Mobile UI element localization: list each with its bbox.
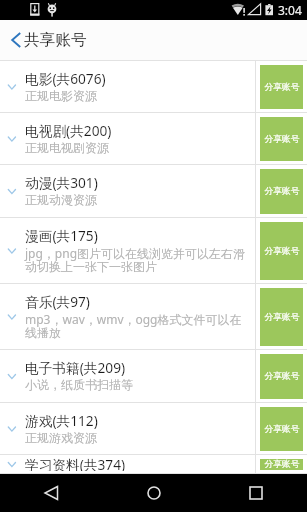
button[interactable]: 动漫(共301) [0,165,255,218]
button[interactable]: 分享账号 [260,65,303,109]
staticText: 动漫(共301) [25,173,98,192]
staticText: 漫画(共175) [25,226,98,245]
button[interactable]: 学习资料(共374) [0,455,255,474]
staticText: 电视剧(共200) [25,121,112,140]
staticText: 分享账号 [264,134,300,145]
staticText: 分享账号 [264,424,300,435]
staticText: 小说，纸质书扫描等 [25,377,133,392]
staticText: 正规游戏资源 [25,430,97,445]
button[interactable]: 游戏(共112) [0,403,255,455]
staticText: 分享账号 [264,459,300,470]
staticText: 正规电视剧资源 [25,140,109,155]
button[interactable]: 分享账号 [260,288,303,346]
staticText: 正规动漫资源 [25,192,97,207]
staticText: jpg，png图片可以在线浏览并可以左右滑动切换上一张下一张图片 [25,245,247,274]
staticText: 学习资料(共374) [25,455,126,471]
button[interactable]: 分享账号 [260,222,303,280]
staticText: 3:04 [278,2,302,18]
button[interactable]: 电视剧(共200) [0,113,255,165]
button[interactable]: 分享账号 [260,407,303,451]
button[interactable]: Back [0,474,103,512]
staticText: 电影(共6076) [25,69,106,88]
button[interactable]: Home [103,474,205,512]
staticText: 游戏(共112) [25,411,98,430]
button[interactable]: 漫画(共175) [0,218,255,284]
button[interactable]: Back [0,20,307,60]
button[interactable]: Recents [205,474,307,512]
button[interactable]: 音乐(共97) [0,284,255,350]
staticText: 分享账号 [264,312,300,323]
other: Back [0,20,24,60]
button[interactable]: 电子书籍(共209) [0,350,255,403]
staticText: mp3，wav，wmv，ogg格式文件可以在线播放 [25,311,247,340]
staticText: 分享账号 [264,82,300,93]
button[interactable]: 电影(共6076) [0,61,255,113]
button[interactable]: 分享账号 [260,117,303,161]
staticText: 共享账号 [24,30,87,50]
staticText: 分享账号 [264,246,300,257]
staticText: 分享账号 [264,186,300,197]
staticText: 音乐(共97) [25,292,90,311]
button[interactable]: 分享账号 [260,169,303,214]
staticText: 电子书籍(共209) [25,358,126,377]
button[interactable]: 分享账号 [260,354,303,399]
staticText: 分享账号 [264,371,300,382]
staticText: 正规电影资源 [25,88,97,103]
button[interactable]: 分享账号 [260,459,303,470]
